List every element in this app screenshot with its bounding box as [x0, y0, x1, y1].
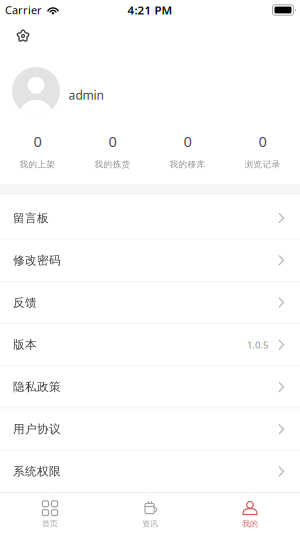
- button[interactable]: 反馈: [0, 282, 300, 324]
- staticText: 我的上架: [19, 159, 55, 170]
- staticText: 0: [258, 131, 266, 151]
- staticText: 留言板: [13, 211, 49, 225]
- button[interactable]: 0: [0, 130, 75, 178]
- button[interactable]: 用户协议: [0, 409, 300, 451]
- staticText: 浏览记录: [244, 159, 280, 170]
- staticText: 1.0.5: [247, 338, 268, 351]
- staticText: Carrier: [5, 3, 42, 17]
- button[interactable]: 版本: [0, 324, 300, 366]
- staticText: 我的: [242, 519, 258, 529]
- button[interactable]: 0: [225, 130, 300, 178]
- button[interactable]: 0: [75, 130, 150, 178]
- staticText: 修改密码: [13, 253, 61, 268]
- staticText: 系统权限: [13, 464, 61, 479]
- button[interactable]: 我的: [200, 493, 300, 536]
- button[interactable]: 隐私政策: [0, 366, 300, 409]
- staticText: 隐私政策: [13, 380, 61, 394]
- staticText: 首页: [42, 519, 58, 529]
- staticText: 用户协议: [13, 422, 61, 436]
- staticText: 资讯: [142, 519, 158, 529]
- button[interactable]: 系统权限: [0, 451, 300, 493]
- button[interactable]: 首页: [0, 493, 100, 536]
- staticText: 4:21 PM: [127, 2, 172, 18]
- staticText: 0: [183, 131, 191, 151]
- staticText: 版本: [13, 337, 37, 352]
- button[interactable]: 资讯: [100, 493, 200, 536]
- staticText: 反馈: [13, 295, 37, 310]
- button[interactable]: Settings: [8, 21, 38, 51]
- staticText: admin: [68, 87, 103, 103]
- staticText: 0: [33, 131, 41, 151]
- button[interactable]: 留言板: [0, 197, 300, 240]
- staticText: 我的拣货: [94, 159, 130, 170]
- staticText: 0: [108, 131, 116, 151]
- button[interactable]: 修改密码: [0, 240, 300, 282]
- staticText: 我的移库: [169, 159, 205, 170]
- button[interactable]: 0: [150, 130, 225, 178]
